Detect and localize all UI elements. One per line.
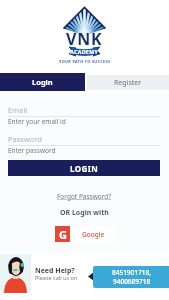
staticText: Enter password	[8, 146, 56, 155]
button[interactable]: Register	[87, 75, 169, 90]
staticText: ACADEMY	[70, 48, 99, 55]
staticText: OR Login with	[60, 208, 109, 218]
button[interactable]: Login	[0, 73, 85, 91]
staticText: G	[59, 227, 67, 242]
button[interactable]: 8451901718,	[93, 266, 169, 288]
staticText: Register	[114, 78, 142, 88]
staticText: 9400689718	[113, 277, 151, 286]
staticText: VNK	[66, 28, 103, 50]
staticText: Login	[32, 77, 53, 87]
staticText: Email	[8, 105, 28, 115]
staticText: Enter your email id	[8, 117, 66, 126]
button[interactable]: Forgot Password?	[57, 192, 112, 201]
staticText: Google	[82, 230, 105, 239]
staticText: Password	[8, 134, 42, 144]
staticText: YOUR PATH TO SUCCESS	[59, 59, 111, 64]
button[interactable]: G	[55, 226, 116, 242]
button[interactable]: LOGIN	[8, 160, 160, 176]
staticText: Need Help?	[35, 266, 75, 276]
staticText: LOGIN	[70, 163, 99, 174]
staticText: 8451901718,	[112, 268, 151, 277]
staticText: Please call us on	[35, 274, 78, 281]
